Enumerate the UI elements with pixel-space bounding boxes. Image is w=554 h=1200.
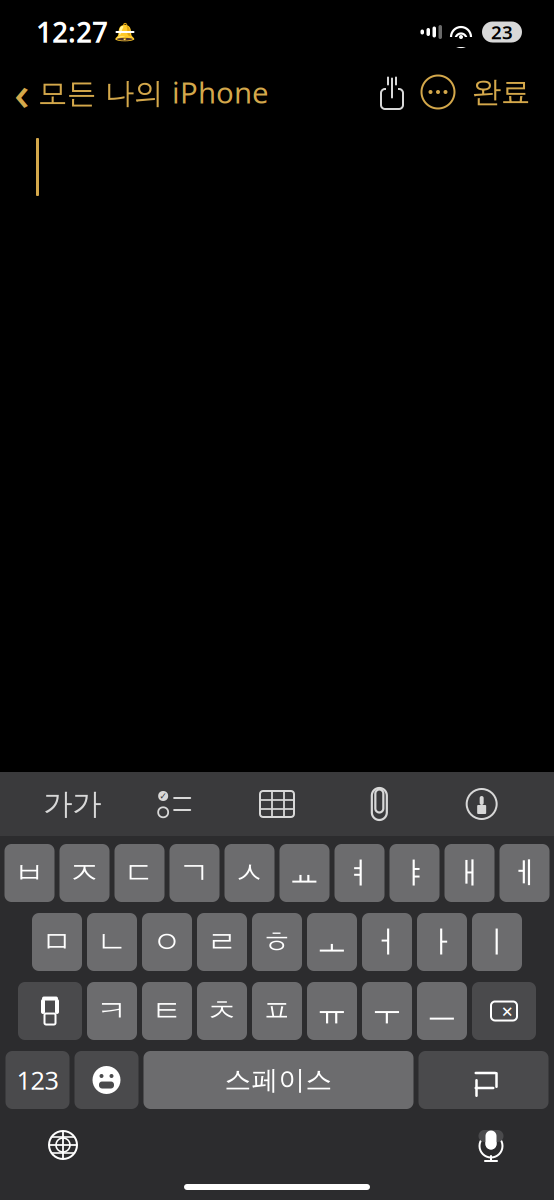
button[interactable]: 체크리스트 — [145, 780, 205, 828]
staticText: ㅁ — [41, 923, 72, 961]
staticText: 23 — [491, 20, 513, 44]
button[interactable]: ㄷ — [114, 844, 164, 902]
button[interactable]: ㄴ — [87, 913, 137, 971]
button[interactable]: ㅏ — [417, 913, 467, 971]
button[interactable]: 공유 — [370, 75, 414, 109]
button[interactable]: ㅁ — [32, 913, 82, 971]
button[interactable]: 받아쓰기 — [456, 1122, 526, 1168]
button[interactable]: ㅠ — [307, 982, 357, 1040]
staticText: ㅣ — [481, 923, 512, 961]
staticText: × — [501, 998, 512, 1024]
staticText: ㅂ — [14, 854, 45, 892]
staticText: ㅗ — [316, 923, 347, 961]
staticText: ㅜ — [371, 992, 402, 1030]
staticText: ㅡ — [426, 992, 457, 1030]
staticText: ㅈ — [69, 854, 100, 892]
button[interactable]: ㅛ — [279, 844, 329, 902]
button[interactable]: ㅑ — [389, 844, 439, 902]
staticText: ㅌ — [151, 992, 182, 1030]
button[interactable]: ㅈ — [59, 844, 109, 902]
button[interactable]: ㅜ — [362, 982, 412, 1040]
button[interactable]: ㅔ — [499, 844, 549, 902]
button[interactable]: 삭제 — [472, 982, 536, 1040]
button[interactable]: ㅐ — [444, 844, 494, 902]
button[interactable]: ㄹ — [197, 913, 247, 971]
button[interactable]: ㅂ — [4, 844, 54, 902]
staticText: ㅔ — [509, 854, 540, 892]
staticText: ㅑ — [399, 854, 430, 892]
staticText: ㅐ — [454, 854, 485, 892]
button[interactable]: ㄱ — [169, 844, 219, 902]
button[interactable]: 줄바꿈 — [418, 1051, 548, 1109]
staticText: ㅋ — [96, 992, 127, 1030]
button[interactable]: ㅊ — [197, 982, 247, 1040]
staticText: ㅏ — [426, 923, 457, 961]
button[interactable]: ㅣ — [472, 913, 522, 971]
button[interactable]: ㅎ — [252, 913, 302, 971]
staticText: ㅎ — [261, 923, 292, 961]
staticText: ㅅ — [234, 854, 265, 892]
button[interactable]: ㅌ — [142, 982, 192, 1040]
staticText: ㅇ — [151, 923, 182, 961]
staticText: 12:27 — [36, 13, 108, 51]
button[interactable]: ㅇ — [142, 913, 192, 971]
button[interactable]: ㅋ — [87, 982, 137, 1040]
staticText: ㄷ — [124, 854, 155, 892]
staticText: ㄱ — [179, 854, 210, 892]
staticText: 가가 — [43, 786, 101, 822]
button[interactable]: 첨부 — [349, 780, 409, 828]
button[interactable]: 표 — [247, 780, 307, 828]
button[interactable]: ㅅ — [224, 844, 274, 902]
button[interactable]: ‹ — [0, 54, 269, 130]
button[interactable]: 이모티콘 — [74, 1051, 138, 1109]
button[interactable]: ㅗ — [307, 913, 357, 971]
staticText: 완료 — [472, 74, 530, 110]
button[interactable]: ㅡ — [417, 982, 467, 1040]
staticText: ㅠ — [316, 992, 347, 1030]
button[interactable]: 완료 — [462, 74, 540, 110]
button[interactable]: 123 — [5, 1051, 69, 1109]
button[interactable]: ㅍ — [252, 982, 302, 1040]
staticText: ㅛ — [289, 854, 320, 892]
staticText: ㄹ — [206, 923, 237, 961]
staticText: ㅍ — [261, 992, 292, 1030]
button[interactable]: Shift — [18, 982, 82, 1040]
button[interactable]: 다음 키보드 — [28, 1122, 98, 1168]
button[interactable]: 스페이스 — [143, 1051, 413, 1109]
staticText: 🔔 — [114, 22, 136, 42]
button[interactable]: 마크업 — [452, 780, 512, 828]
staticText: ㅓ — [371, 923, 402, 961]
button[interactable]: ㅓ — [362, 913, 412, 971]
staticText: 123 — [16, 1063, 58, 1097]
staticText: ‹ — [14, 60, 30, 124]
staticText: ㅊ — [206, 992, 237, 1030]
button[interactable]: ㅕ — [334, 844, 384, 902]
button[interactable]: 서식 — [42, 780, 102, 828]
staticText: 모든 나의 iPhone — [38, 72, 269, 111]
button[interactable]: 더 보기 — [414, 72, 462, 112]
staticText: ㅕ — [344, 854, 375, 892]
staticText: ㄴ — [96, 923, 127, 961]
staticText: ✓ — [159, 791, 167, 801]
staticText: 스페이스 — [224, 1064, 332, 1096]
